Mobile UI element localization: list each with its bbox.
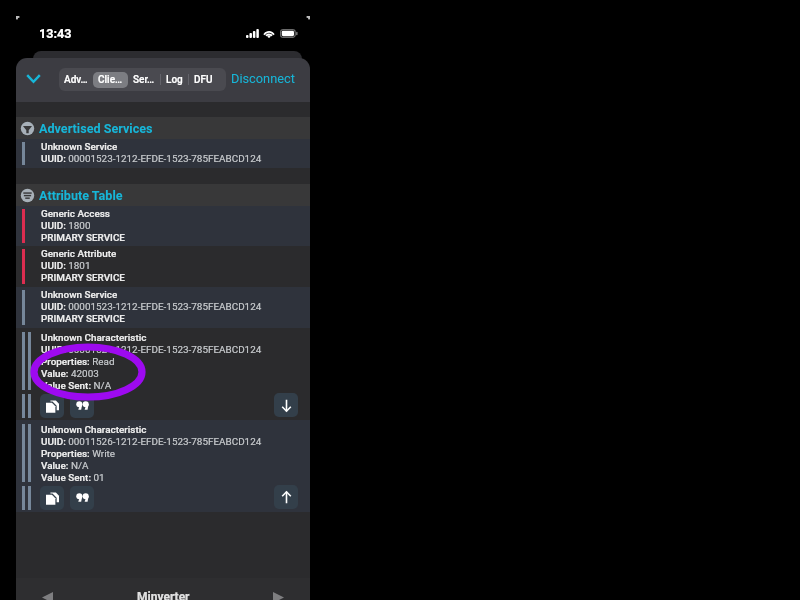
button[interactable]: Write value [274,485,298,509]
staticText: Disconnect [231,71,295,86]
button[interactable]: DFU [189,72,218,88]
staticText: UUID: 1800 [41,220,91,232]
staticText: UUID: 00001523-1212-EFDE-1523-785FEABCD1… [41,301,262,313]
button[interactable]: Adv… [59,72,93,88]
staticText: UUID: 1801 [41,260,91,272]
staticText: Unknown Service [41,289,118,301]
button[interactable]: Unknown Service [16,287,310,328]
button[interactable]: Collapse [23,68,43,88]
staticText: Advertised Services [39,121,153,136]
staticText: DFU [194,74,213,86]
button[interactable]: Attribute Table [16,184,310,206]
button[interactable]: Quote [70,394,94,418]
staticText: Value Sent: N/A [41,380,112,392]
staticText: Ser… [133,74,155,86]
staticText: UUID: 00001524-1212-EFDE-1523-785FEABCD1… [41,344,262,356]
staticText: Value: N/A [41,460,89,472]
staticText: Properties: Write [41,448,116,460]
staticText: Generic Attribute [41,248,117,260]
staticText: Minverter [137,590,190,600]
button[interactable]: Unknown Characteristic [16,328,310,420]
staticText: Unknown Characteristic [41,332,147,344]
staticText: Log [166,74,183,86]
button[interactable]: Copy [40,394,64,418]
button[interactable]: Clie… [93,72,128,88]
button[interactable]: Ser… [128,72,160,88]
button[interactable]: Generic Access [16,206,310,246]
staticText: UUID: 00001523-1212-EFDE-1523-785FEABCD1… [41,153,262,165]
button[interactable]: Read value [274,393,298,417]
button[interactable]: Copy [40,486,64,510]
staticText: Value: 42003 [41,368,99,380]
button[interactable]: Unknown Characteristic [16,420,310,512]
button[interactable]: Disconnect [229,69,297,88]
staticText: PRIMARY SERVICE [41,272,125,284]
staticText: Adv… [64,74,88,86]
staticText: Value Sent: 01 [41,472,105,484]
staticText: 13:43 [39,26,72,41]
button[interactable]: Generic Attribute [16,246,310,287]
staticText: PRIMARY SERVICE [41,313,125,325]
staticText: Attribute Table [39,188,123,203]
staticText: UUID: 00011526-1212-EFDE-1523-785FEABCD1… [41,436,262,448]
staticText: Unknown Characteristic [41,424,147,436]
button[interactable]: Quote [70,486,94,510]
staticText: Generic Access [41,208,110,220]
staticText: Properties: Read [41,356,115,368]
button[interactable]: Advertised Services [16,117,310,139]
button[interactable]: Unknown Service [16,139,310,168]
staticText: Clie… [98,74,123,86]
staticText: PRIMARY SERVICE [41,232,125,244]
staticText: Unknown Service [41,141,118,153]
button[interactable]: Log [161,72,188,88]
